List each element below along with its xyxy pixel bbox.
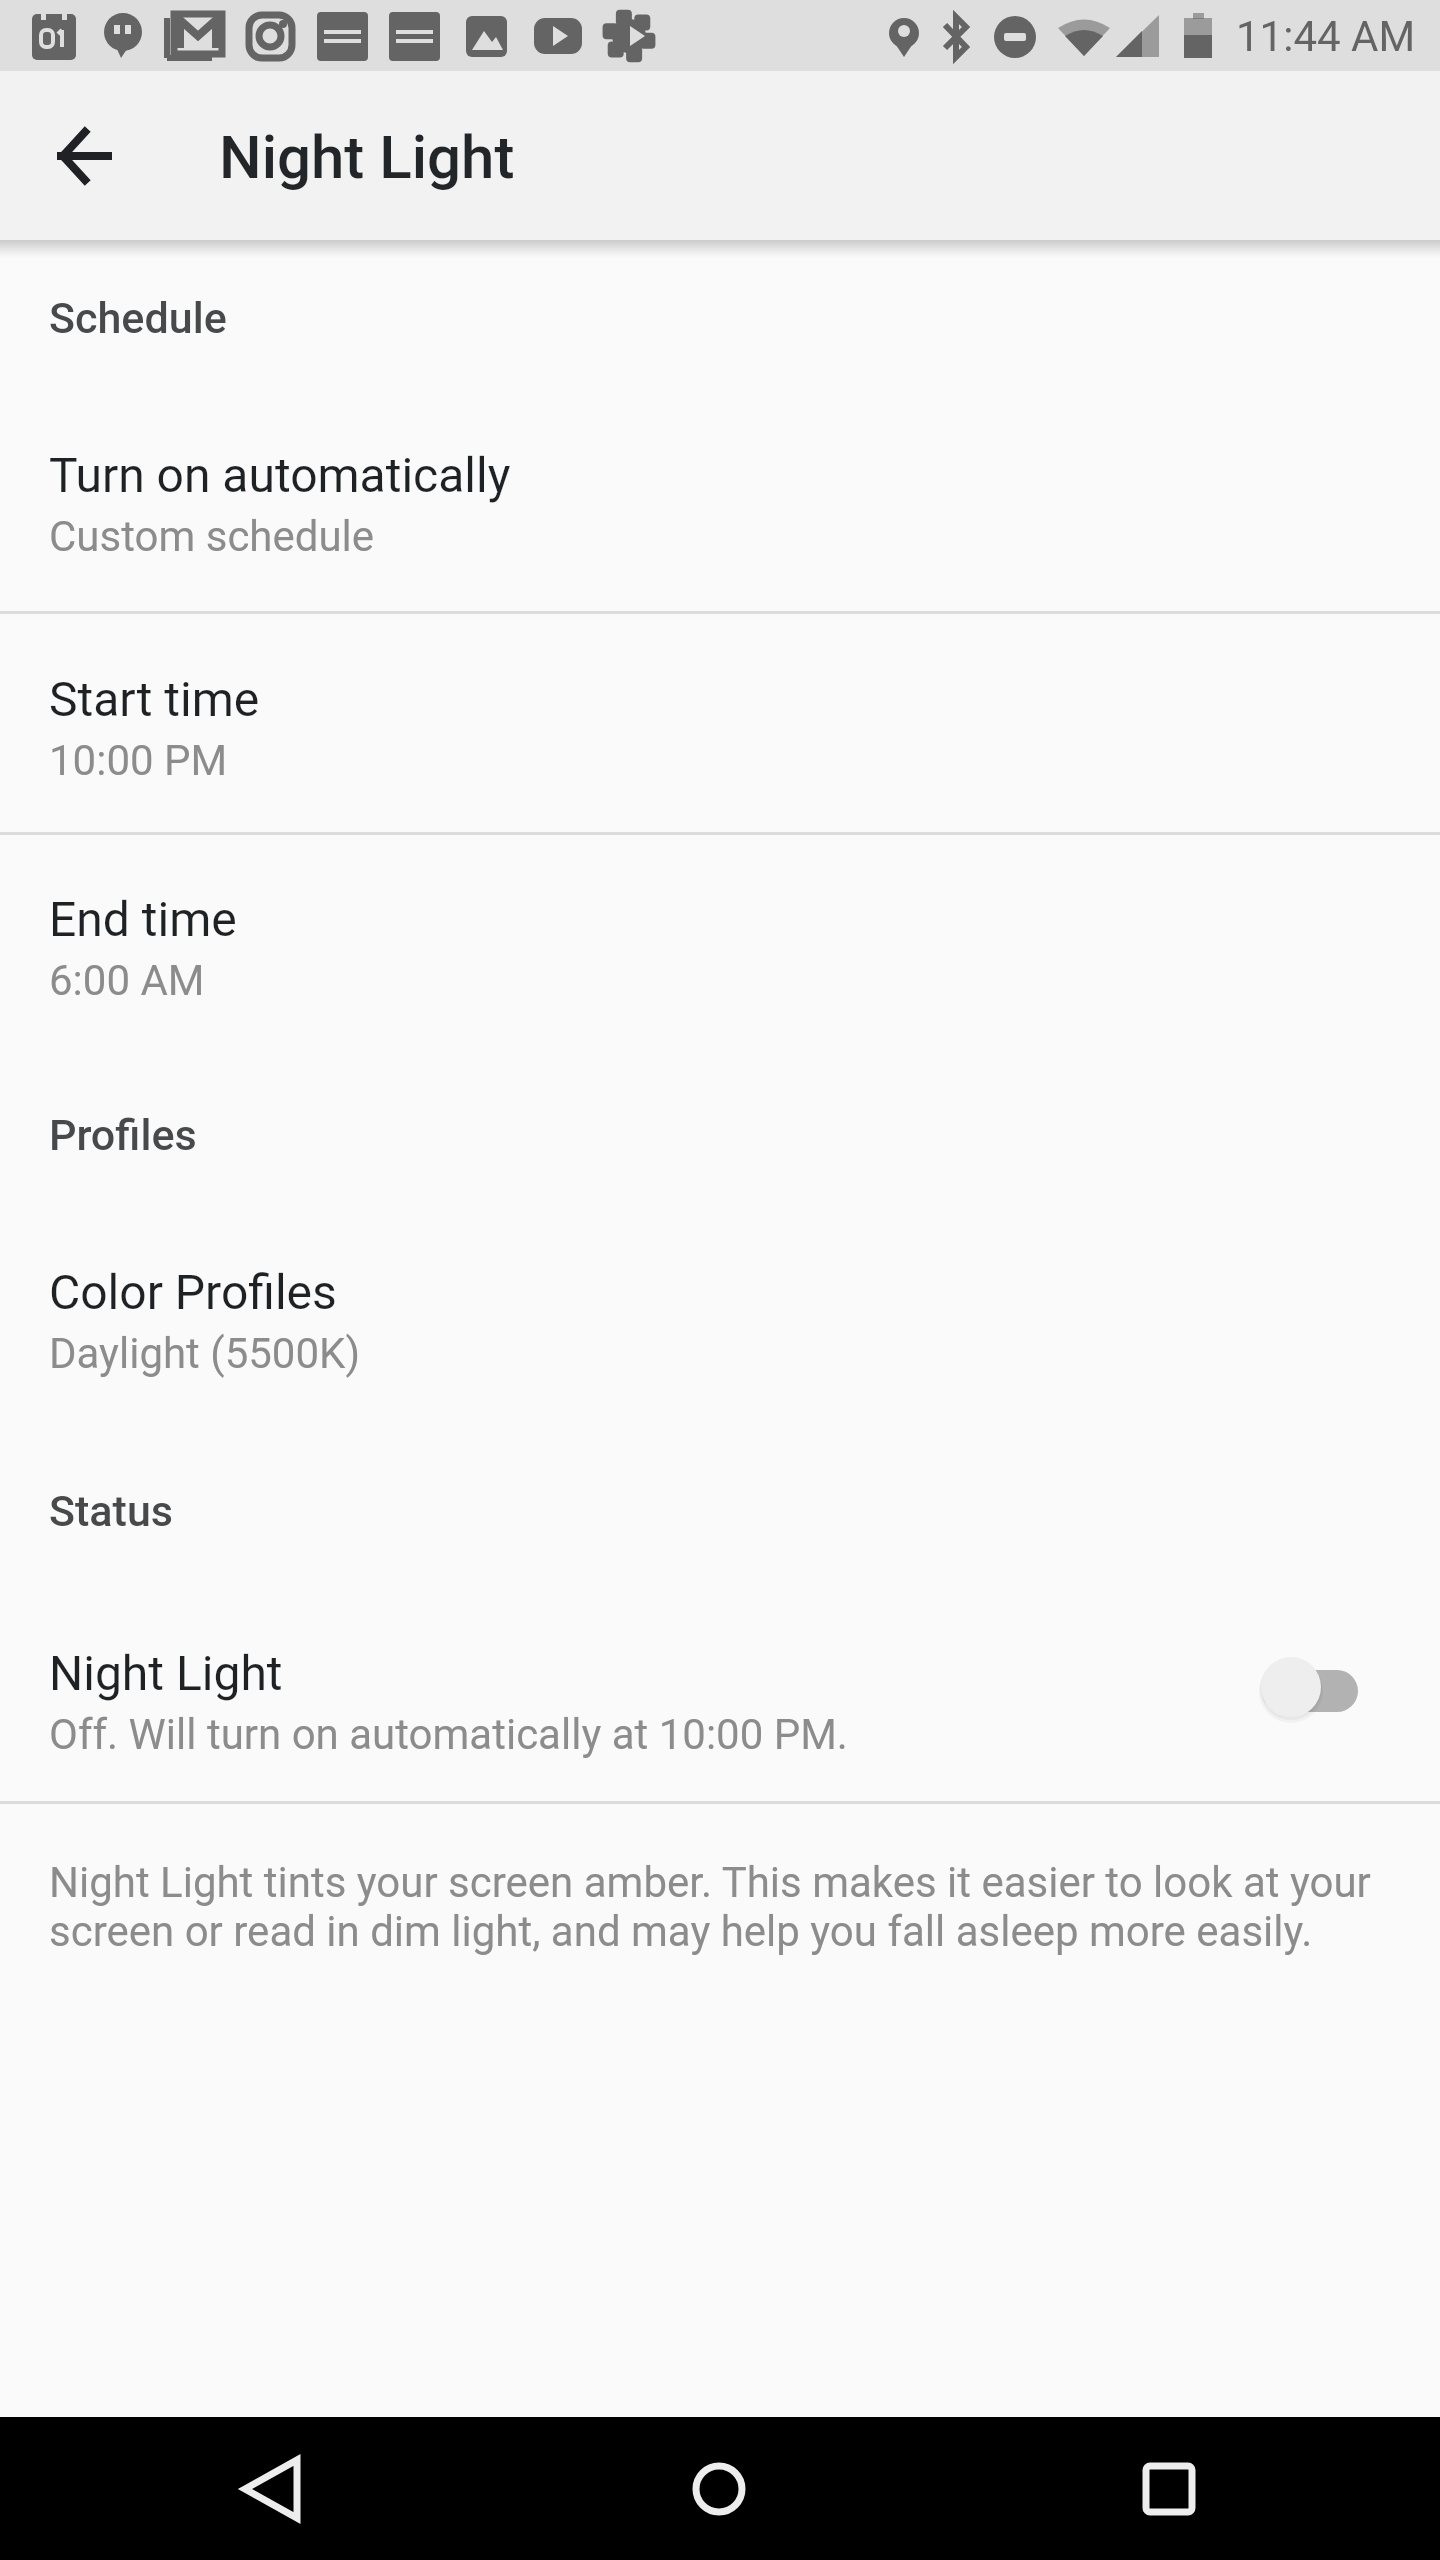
staticText: Turn on automatically	[49, 447, 511, 503]
staticText: Off. Will turn on automatically at 10:00…	[49, 1710, 848, 1759]
button[interactable]: Turn on automatically	[0, 411, 1440, 611]
staticText: Schedule	[49, 293, 227, 343]
button[interactable]: Home	[647, 2417, 791, 2560]
staticText: 6:00 AM	[49, 956, 205, 1005]
staticText: Custom schedule	[49, 512, 375, 561]
button[interactable]: Color Profiles	[0, 1228, 1440, 1428]
staticText: End time	[49, 891, 237, 947]
staticText: Night Light	[49, 1645, 283, 1701]
button[interactable]: Recent apps	[1097, 2417, 1241, 2560]
staticText: Profiles	[49, 1110, 197, 1160]
button[interactable]: Navigate up	[28, 100, 140, 212]
staticText: Daylight (5500K)	[49, 1329, 361, 1378]
staticText: 10:00 PM	[49, 736, 228, 785]
staticText: Night Light tints your screen amber. Thi…	[49, 1858, 1389, 1956]
button[interactable]: Start time	[0, 614, 1440, 832]
button[interactable]: End time	[0, 835, 1440, 1055]
staticText: Night Light	[219, 122, 515, 192]
staticText: Status	[49, 1486, 174, 1536]
staticText: 11:44 AM	[1236, 12, 1416, 61]
button[interactable]: Night Light	[0, 1604, 1440, 1801]
staticText: Start time	[49, 671, 260, 727]
button[interactable]: Back	[199, 2417, 343, 2560]
staticText: Color Profiles	[49, 1264, 337, 1320]
